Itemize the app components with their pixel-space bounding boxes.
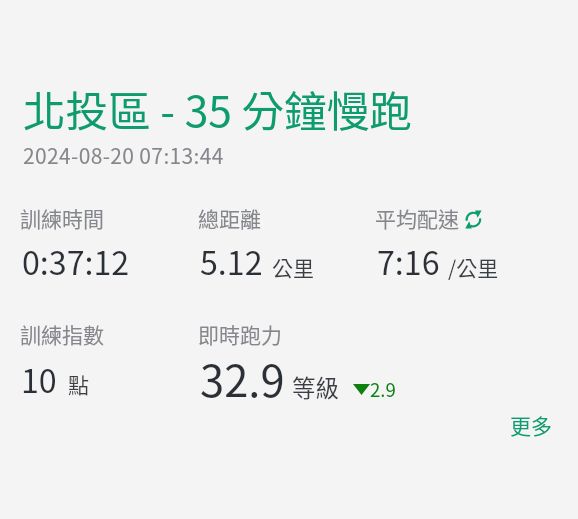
staticText: /公里 [448, 252, 499, 282]
staticText: 2.9 [370, 375, 396, 402]
staticText: 總距離 [198, 203, 261, 233]
staticText: 5.12 [200, 238, 263, 285]
staticText: 10 [21, 356, 57, 403]
staticText: 0:37:12 [22, 238, 130, 285]
staticText: 等級 [292, 370, 339, 404]
staticText: 訓練時間 [20, 203, 104, 233]
staticText: 訓練指數 [20, 319, 104, 349]
staticText: 公里 [272, 252, 314, 282]
staticText: 32.9 [200, 347, 285, 410]
staticText: 北投區 - 35 分鐘慢跑 [23, 78, 412, 140]
staticText: 2024-08-20 07:13:44 [23, 140, 224, 170]
button[interactable]: 更多 [510, 410, 552, 440]
staticText: 點 [68, 369, 89, 399]
button[interactable]: Refresh average pace [464, 210, 482, 229]
staticText: 即時跑力 [198, 319, 282, 349]
staticText: 平均配速 [375, 203, 459, 233]
staticText: 7:16 [377, 238, 440, 285]
staticText: 更多 [510, 410, 552, 440]
